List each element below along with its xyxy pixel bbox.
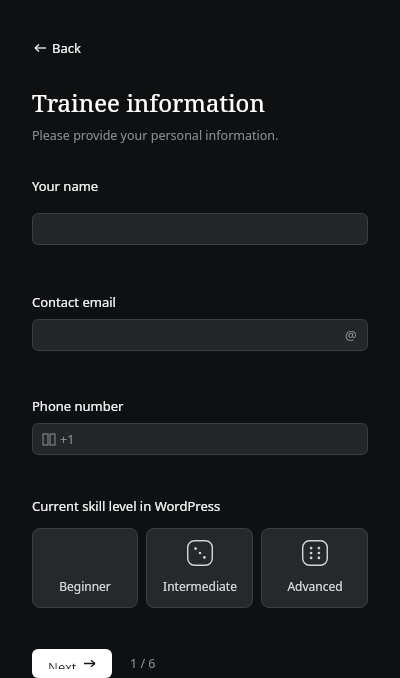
staticText: Trainee information <box>32 86 265 119</box>
staticText: Back <box>52 39 81 57</box>
button[interactable]: +1 <box>32 423 368 455</box>
button[interactable]: Back <box>32 37 83 59</box>
staticText: Phone number <box>32 397 124 415</box>
button[interactable]: Beginner <box>32 528 138 608</box>
staticText: Your name <box>32 177 99 195</box>
staticText: Intermediate <box>163 578 237 594</box>
staticText: +1 <box>60 431 75 448</box>
button[interactable]: Next <box>32 649 112 678</box>
button[interactable] <box>32 213 368 245</box>
staticText: @ <box>345 326 357 344</box>
staticText: Contact email <box>32 293 116 311</box>
button[interactable]: @ <box>32 319 368 351</box>
staticText: 1 / 6 <box>130 655 156 672</box>
staticText: Beginner <box>59 578 111 594</box>
staticText: Current skill level in WordPress <box>32 497 221 515</box>
staticText: Next <box>48 658 77 669</box>
button[interactable]: Intermediate <box>146 528 253 608</box>
button[interactable]: Advanced <box>261 528 368 608</box>
staticText: Advanced <box>287 578 343 594</box>
staticText: Please provide your personal information… <box>32 127 279 144</box>
